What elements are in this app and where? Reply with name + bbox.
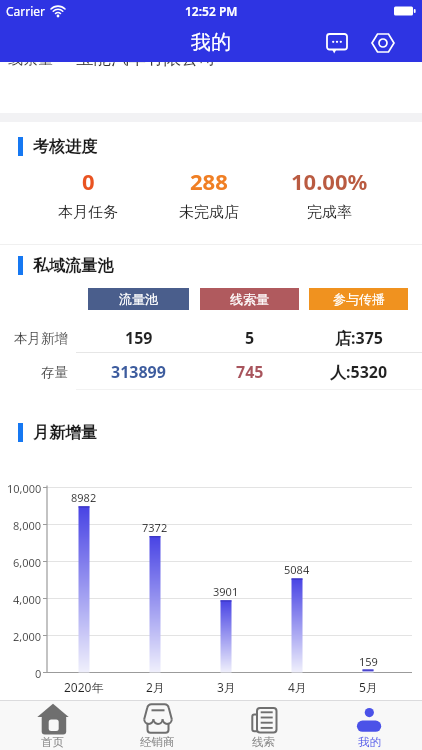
staticText: 2,000 bbox=[13, 629, 42, 644]
button[interactable]: 首页 bbox=[0, 701, 105, 750]
button[interactable]: 线索量 bbox=[200, 288, 299, 310]
staticText: 8,000 bbox=[13, 518, 42, 533]
staticText: 我的 bbox=[358, 735, 381, 749]
staticText: 本月新增 bbox=[14, 330, 68, 347]
staticText: 0 bbox=[82, 166, 95, 196]
staticText: 未完成店 bbox=[179, 203, 239, 222]
staticText: 2020年 bbox=[64, 679, 104, 695]
staticText: 店:375 bbox=[335, 327, 383, 349]
staticText: 159 bbox=[359, 654, 378, 669]
button[interactable]: 流量池 bbox=[88, 288, 189, 310]
staticText: 159 bbox=[125, 327, 153, 349]
staticText: 0 bbox=[35, 666, 42, 681]
staticText: 流量池 bbox=[119, 291, 158, 307]
staticText: 人:5320 bbox=[330, 361, 388, 383]
staticText: 线索量 bbox=[8, 50, 53, 69]
staticText: 本月任务 bbox=[58, 203, 118, 222]
button[interactable]: 我的 bbox=[316, 701, 422, 750]
staticText: 线索 bbox=[252, 735, 275, 749]
staticText: 参与传播 bbox=[333, 291, 385, 307]
staticText: 存量 bbox=[41, 364, 68, 381]
staticText: 12:52 PM bbox=[185, 3, 238, 19]
staticText: 288 bbox=[190, 166, 228, 196]
button[interactable]: 经销商 bbox=[105, 701, 210, 750]
button[interactable] bbox=[368, 28, 398, 58]
staticText: 经销商 bbox=[140, 735, 175, 749]
staticText: 10,000 bbox=[7, 481, 42, 496]
staticText: 313899 bbox=[111, 361, 166, 383]
staticText: 8982 bbox=[71, 490, 97, 505]
staticText: 3901 bbox=[213, 584, 239, 599]
staticText: 5084 bbox=[284, 562, 310, 577]
staticText: 5 bbox=[245, 327, 255, 349]
staticText: 完成率 bbox=[307, 203, 352, 222]
staticText: 7372 bbox=[142, 520, 168, 535]
staticText: 5月 bbox=[359, 679, 378, 695]
staticText: 4月 bbox=[288, 679, 307, 695]
button[interactable]: 参与传播 bbox=[309, 288, 408, 310]
staticText: 3月 bbox=[217, 679, 236, 695]
staticText: 6,000 bbox=[13, 555, 42, 570]
staticText: 10.00% bbox=[291, 166, 368, 196]
staticText: 线索量 bbox=[230, 291, 269, 307]
staticText: 私域流量池 bbox=[33, 256, 113, 276]
staticText: 月新增量 bbox=[33, 423, 97, 443]
staticText: 首页 bbox=[41, 735, 64, 749]
staticText: 2月 bbox=[146, 679, 165, 695]
staticText: 考核进度 bbox=[33, 137, 97, 157]
staticText: 745 bbox=[236, 361, 264, 383]
staticText: 4,000 bbox=[13, 592, 42, 607]
staticText: Carrier bbox=[6, 3, 46, 19]
button[interactable]: 线索 bbox=[210, 701, 316, 750]
staticText: 我的 bbox=[191, 30, 231, 55]
button[interactable] bbox=[322, 28, 352, 58]
staticText: 宝能汽车有限公司 bbox=[76, 47, 216, 69]
